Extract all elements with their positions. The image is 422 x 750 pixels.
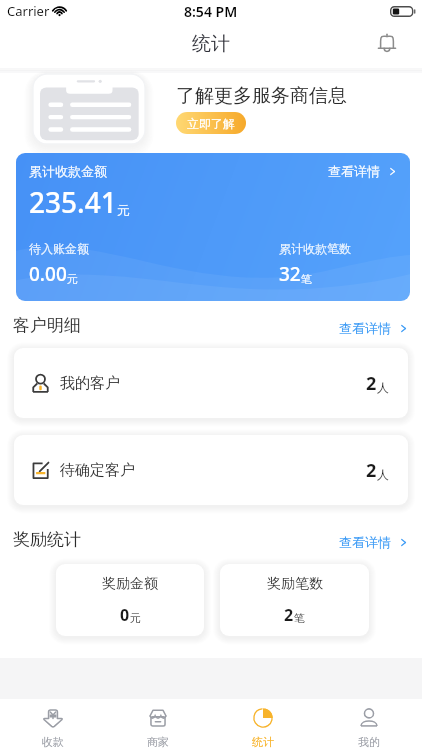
staticText: 笔 [301,272,312,286]
staticText: 奖励笔数 [267,575,323,593]
button[interactable]: 我的 [316,699,422,750]
staticText: 元 [67,272,78,286]
staticText: 奖励金额 [102,575,158,593]
button[interactable]: 了解更多服务商信息 [0,73,422,153]
staticText: 立即了解 [187,116,235,131]
button[interactable]: 奖励金额 [56,564,204,636]
button[interactable]: 查看详情 [328,163,398,179]
staticText: 我的 [358,735,380,749]
staticText: 商家 [147,735,169,749]
staticText: 0.00 [29,261,67,287]
staticText: 客户明细 [13,315,81,336]
button[interactable]: 统计 [210,699,316,750]
staticText: 统计 [252,735,274,749]
staticText: 元 [117,202,130,218]
staticText: 累计收款金额 [29,163,107,179]
button[interactable]: 我的客户 [14,348,408,418]
button[interactable]: 查看详情 [339,318,409,338]
staticText: 了解更多服务商信息 [176,84,347,108]
staticText: 查看详情 [339,320,391,336]
button[interactable]: 立即了解 [176,112,246,134]
staticText: 2 [284,604,294,626]
staticText: 0 [120,604,130,626]
staticText: 奖励统计 [13,529,81,550]
button[interactable]: 查看详情 [339,532,409,552]
staticText: 待入账金额 [29,241,89,256]
button[interactable]: 收款 [0,699,105,750]
staticText: Carrier [7,2,50,20]
button[interactable]: Notifications [370,26,404,60]
staticText: 待确定客户 [60,461,135,480]
staticText: 人 [377,380,389,395]
staticText: 元 [130,611,141,625]
staticText: 笔 [294,611,305,625]
staticText: 235.41 [29,183,117,221]
staticText: 统计 [192,32,230,56]
button[interactable]: 累计收款金额 [16,153,410,301]
button[interactable]: 商家 [105,699,210,750]
staticText: 累计收款笔数 [279,241,351,256]
button[interactable]: 奖励笔数 [220,564,369,636]
staticText: 查看详情 [328,163,380,179]
staticText: 32 [279,261,301,287]
staticText: 我的客户 [60,374,120,393]
staticText: 2 [366,371,377,396]
staticText: 查看详情 [339,534,391,550]
button[interactable]: 待确定客户 [14,435,408,505]
staticText: 收款 [42,735,64,749]
staticText: 人 [377,467,389,482]
staticText: 8:54 PM [184,2,238,21]
staticText: 2 [366,458,377,483]
